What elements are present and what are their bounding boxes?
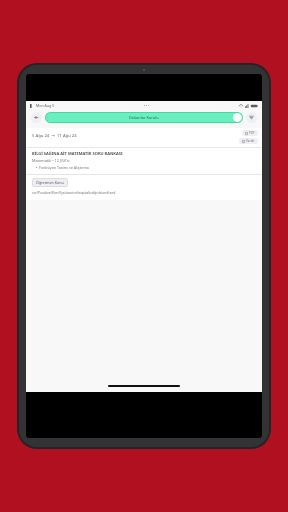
staticText: Matematik • 12 JGV'si (32, 158, 70, 163)
staticText: src/Positive/Konf/ystituntrolinipitalisd… (32, 190, 116, 195)
staticText: Dekanlar Kurulu (129, 115, 159, 120)
button[interactable]: PDF (242, 130, 258, 136)
staticText: 5 Ağu 24 → 11 Ağu 24 (32, 133, 77, 139)
button[interactable]: Filter (246, 112, 257, 123)
staticText: PDF (249, 131, 255, 135)
button[interactable]: Back (31, 112, 42, 123)
staticText: • • • (144, 104, 150, 108)
staticText: Mon Aug 5 (36, 103, 55, 108)
button[interactable]: Dekanlar Kurulu (45, 112, 243, 123)
button[interactable]: Öğretmen Konu (32, 178, 68, 187)
staticText: Öğretmen Konu (36, 180, 64, 185)
button[interactable]: Yazdır (239, 138, 258, 144)
staticText: Fonksiyon Tanımı ve Alıştırma (39, 165, 89, 170)
staticText: BİLGİ SAĞINA AİT MATEMATİK SORU BANKASI (32, 151, 123, 156)
staticText: Yazdır (246, 139, 255, 143)
